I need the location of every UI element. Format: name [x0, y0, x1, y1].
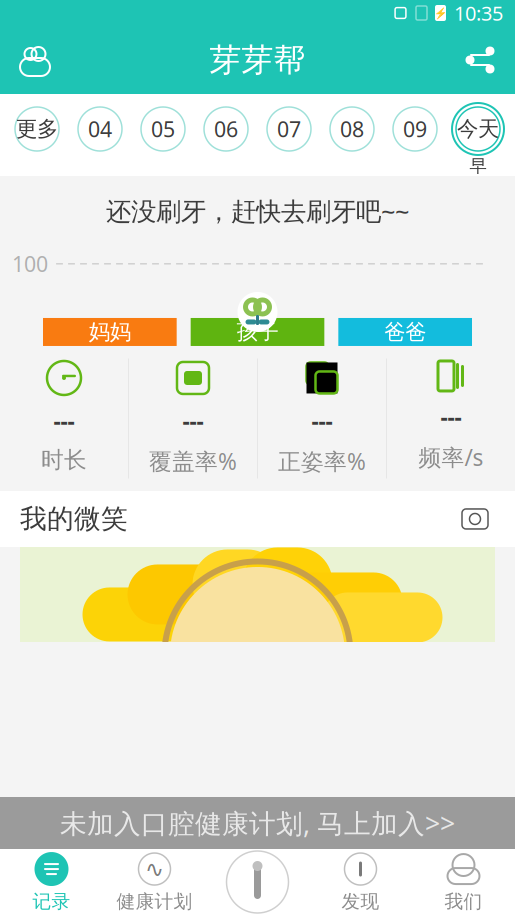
staticText: ∿: [145, 856, 164, 882]
staticText: 发现: [341, 890, 379, 913]
staticText: ---: [53, 406, 74, 436]
staticText: 健康计划: [116, 890, 192, 913]
staticText: [349, 154, 354, 177]
button[interactable]: ∿: [103, 851, 206, 913]
staticText: 正姿率%: [278, 446, 366, 476]
staticText: 覆盖率%: [149, 446, 237, 476]
button[interactable]: 06: [199, 102, 253, 174]
staticText: 早: [469, 155, 486, 177]
staticText: 07: [277, 115, 301, 143]
button[interactable]: 孩子: [191, 318, 324, 346]
staticText: [286, 154, 291, 177]
button[interactable]: 爸爸: [338, 318, 472, 346]
staticText: ---: [182, 406, 203, 436]
staticText: 孩子: [236, 319, 278, 345]
staticText: [160, 154, 165, 177]
staticText: 今天: [457, 116, 499, 142]
staticText: 时长: [41, 446, 87, 474]
staticText: ⚡: [434, 7, 447, 19]
button[interactable]: 发现: [309, 851, 412, 913]
button[interactable]: 今天: [451, 102, 505, 174]
staticText: 100: [12, 250, 48, 278]
staticText: [223, 154, 228, 177]
staticText: 09: [403, 115, 427, 143]
staticText: 08: [340, 115, 364, 143]
button[interactable]: 妈妈: [43, 318, 177, 346]
staticText: [412, 154, 417, 177]
button[interactable]: 05: [136, 102, 190, 174]
button[interactable]: 分享: [453, 33, 507, 87]
staticText: 还没刷牙，赶快去刷牙吧~~: [106, 194, 409, 228]
staticText: 我们: [444, 890, 482, 913]
button[interactable]: 家庭成员: [8, 33, 62, 87]
staticText: 频率/s: [418, 442, 483, 472]
staticText: 05: [151, 115, 175, 143]
staticText: 06: [214, 115, 238, 143]
staticText: ---: [440, 402, 461, 432]
staticText: 04: [88, 115, 112, 143]
button[interactable]: 更多: [10, 102, 64, 174]
staticText: 未加入口腔健康计划, 马上加入>>: [60, 805, 455, 841]
button[interactable]: 拍照: [455, 502, 495, 536]
button[interactable]: 我们: [412, 851, 515, 913]
staticText: ---: [311, 406, 332, 436]
staticText: 我的微笑: [20, 503, 128, 535]
staticText: 爸爸: [384, 319, 426, 345]
staticText: 妈妈: [89, 319, 131, 345]
button[interactable]: 记录: [0, 851, 103, 913]
staticText: 更多: [16, 116, 58, 142]
button[interactable]: 09: [388, 102, 442, 174]
staticText: [34, 154, 39, 177]
button[interactable]: 08: [325, 102, 379, 174]
staticText: 10:35: [454, 0, 503, 26]
button[interactable]: 开始刷牙: [224, 851, 290, 913]
staticText: 记录: [32, 890, 70, 913]
button[interactable]: 未加入口腔健康计划, 马上加入>>: [0, 797, 515, 849]
button[interactable]: 04: [73, 102, 127, 174]
staticText: 芽芽帮: [209, 40, 305, 80]
button[interactable]: 07: [262, 102, 316, 174]
staticText: [97, 154, 102, 177]
